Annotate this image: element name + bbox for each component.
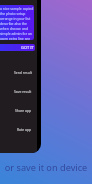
staticText: Save result <box>14 89 32 94</box>
staticText: arrange in your list <box>0 16 31 21</box>
staticText: Share app <box>15 108 32 113</box>
staticText: Rate app <box>17 127 32 132</box>
staticText: describe also the <box>0 21 27 26</box>
staticText: or save it on device <box>0 161 92 174</box>
button[interactable]: Save result <box>0 82 41 101</box>
staticText: GOT IT <box>21 45 34 50</box>
staticText: simple admin for an <box>0 31 32 36</box>
button[interactable]: Rate app <box>0 120 41 139</box>
staticText: open extra line see <box>0 36 31 40</box>
button[interactable]: Send result <box>0 63 41 82</box>
staticText: when choose and <box>0 26 28 31</box>
button[interactable]: Share app <box>0 101 41 120</box>
button[interactable]: GOT IT <box>0 44 35 51</box>
staticText: Send result <box>14 70 32 75</box>
staticText: the photo setup <box>0 11 26 16</box>
staticText: a nice sample copied <box>0 6 34 11</box>
